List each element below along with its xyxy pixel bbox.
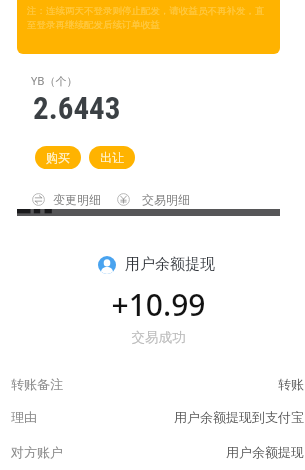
button[interactable]: 理由 xyxy=(0,400,305,433)
staticText: 用户余额提现 xyxy=(226,444,304,460)
button[interactable]: 变更明细 xyxy=(32,190,101,209)
staticText: 理由 xyxy=(11,409,37,425)
staticText: 注：连续两天不登录则停止配发，请收益员不再补发，直 xyxy=(27,5,265,17)
button[interactable]: 对方账户 xyxy=(0,435,305,468)
staticText: 变更明细 xyxy=(53,192,101,207)
staticText: 购买 xyxy=(46,150,70,165)
staticText: 至登录再继续配发后续订单收益 xyxy=(27,19,160,31)
staticText: 2.6443 xyxy=(33,90,121,126)
staticText: 转账备注 xyxy=(11,376,63,392)
button[interactable]: 转账备注 xyxy=(0,367,305,400)
button[interactable]: 购买 xyxy=(35,146,81,169)
other: User avatar xyxy=(98,256,116,274)
staticText: 用户余额提现到支付宝 xyxy=(174,409,304,425)
staticText: 交易明细 xyxy=(142,192,190,207)
staticText: 出让 xyxy=(100,150,124,165)
button[interactable]: 出让 xyxy=(89,146,135,169)
staticText: +10.99 xyxy=(6,284,305,325)
button[interactable]: 交易明细 xyxy=(117,190,190,209)
staticText: 交易成功 xyxy=(6,329,305,346)
staticText: 对方账户 xyxy=(11,444,63,460)
staticText: 用户余额提现 xyxy=(125,255,215,274)
staticText: YB（个） xyxy=(31,73,78,88)
staticText: 转账 xyxy=(278,376,304,392)
